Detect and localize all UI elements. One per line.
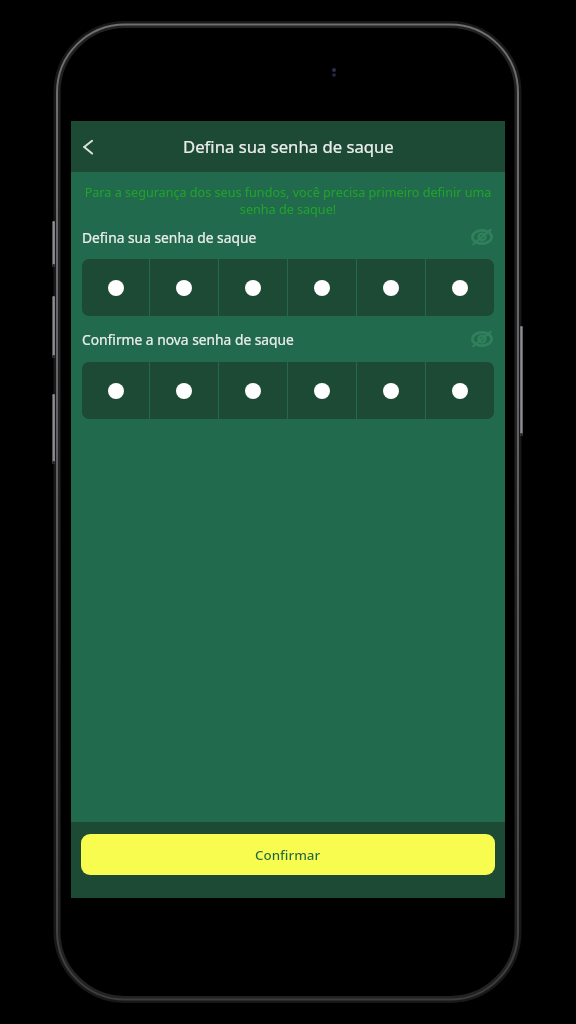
button[interactable] — [150, 362, 218, 419]
button[interactable] — [219, 362, 287, 419]
button[interactable] — [357, 362, 425, 419]
button[interactable] — [357, 259, 425, 316]
button[interactable] — [288, 259, 356, 316]
button[interactable] — [82, 259, 149, 316]
staticText: Defina sua senha de saque — [82, 228, 257, 246]
staticText: Confirmar — [255, 846, 321, 864]
button[interactable] — [150, 259, 218, 316]
button[interactable] — [82, 362, 149, 419]
button[interactable] — [426, 362, 494, 419]
staticText: Defina sua senha de saque — [183, 135, 394, 158]
button[interactable]: Confirmar — [81, 834, 495, 875]
button[interactable] — [426, 259, 494, 316]
button[interactable] — [219, 259, 287, 316]
button[interactable]: Mostrar senha — [471, 330, 493, 348]
button[interactable]: Voltar — [71, 130, 105, 164]
button[interactable]: Mostrar senha — [471, 228, 493, 246]
button[interactable] — [288, 362, 356, 419]
staticText: Confirme a nova senha de saque — [82, 330, 294, 348]
staticText: Para a segurança dos seus fundos, você p… — [82, 184, 494, 217]
